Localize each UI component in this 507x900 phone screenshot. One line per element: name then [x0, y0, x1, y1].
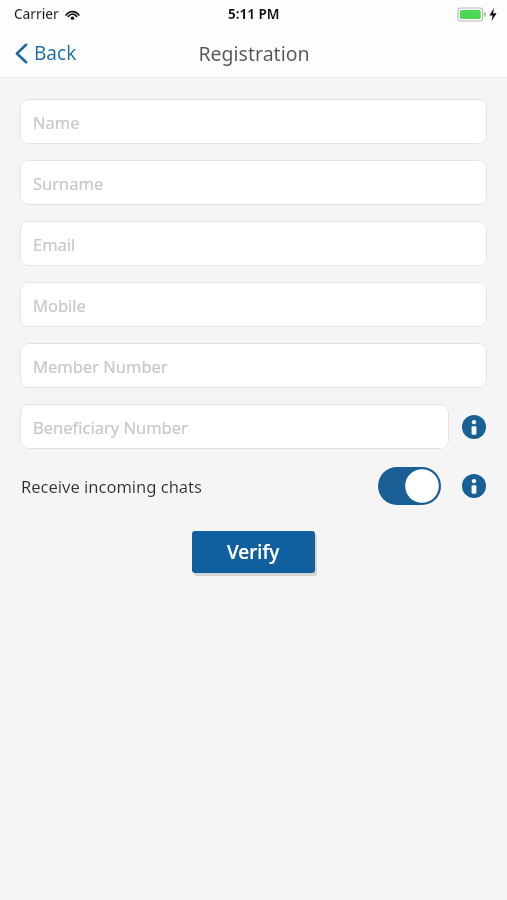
staticText: Receive incoming chats	[21, 475, 202, 497]
staticText: Name	[33, 111, 80, 133]
button[interactable]: Member Number	[20, 343, 487, 388]
staticText: Beneficiary Number	[33, 416, 188, 438]
staticText: Member Number	[33, 355, 168, 377]
button[interactable]: Back	[0, 34, 89, 72]
button[interactable]: Beneficiary Number	[20, 404, 449, 449]
staticText: 5:11 PM	[228, 5, 280, 23]
button[interactable]: Email	[20, 221, 487, 266]
staticText: Verify	[227, 539, 280, 565]
staticText: Email	[33, 233, 76, 255]
staticText: Mobile	[33, 294, 86, 316]
button[interactable]: Verify	[192, 531, 315, 573]
staticText: Registration	[198, 40, 310, 67]
button[interactable]: Receive incoming chats toggle	[378, 467, 441, 505]
staticText: Carrier	[14, 5, 59, 23]
button[interactable]: Name	[20, 99, 487, 144]
button[interactable]: More information	[461, 414, 487, 440]
staticText: Back	[34, 40, 77, 66]
button[interactable]: Surname	[20, 160, 487, 205]
button[interactable]: Mobile	[20, 282, 487, 327]
button[interactable]: More information	[461, 473, 487, 499]
staticText: Surname	[33, 172, 104, 194]
